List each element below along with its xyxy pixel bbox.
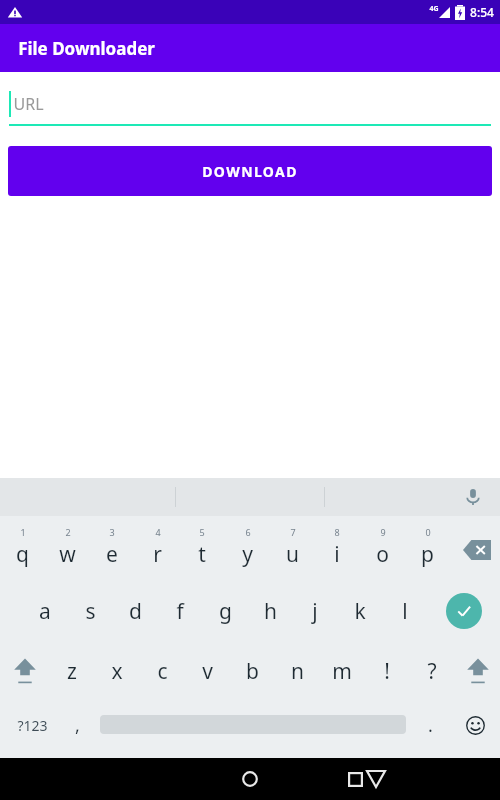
button[interactable]: Home (231, 758, 269, 800)
button[interactable]: v (186, 652, 228, 690)
button[interactable]: Back (126, 758, 500, 800)
staticText: 1 (20, 526, 26, 538)
button[interactable]: h (249, 592, 291, 630)
staticText: h (264, 597, 277, 626)
button[interactable]: c (141, 652, 183, 690)
button[interactable]: d (114, 592, 156, 630)
button[interactable]: n (276, 652, 318, 690)
staticText: n (291, 657, 304, 686)
staticText: ? (427, 657, 437, 686)
button[interactable]: . (412, 710, 448, 740)
button[interactable]: 8 (316, 526, 358, 570)
staticText: 0 (425, 526, 431, 538)
staticText: 9 (380, 526, 386, 538)
button[interactable]: k (339, 592, 381, 630)
staticText: e (106, 540, 118, 569)
staticText: x (111, 657, 123, 686)
staticText: s (85, 597, 96, 626)
staticText: j (312, 597, 318, 626)
staticText: k (354, 597, 366, 626)
staticText: URL (13, 93, 44, 115)
staticText: ?123 (17, 716, 48, 735)
button[interactable]: ?123 (6, 710, 58, 740)
staticText: 4G (429, 4, 439, 14)
button[interactable]: s (69, 592, 111, 630)
button[interactable]: Enter (446, 593, 482, 629)
button[interactable]: URL (9, 84, 491, 126)
staticText: File Downloader (18, 37, 155, 60)
staticText: q (16, 540, 29, 569)
button[interactable]: z (51, 652, 93, 690)
staticText: 8:54 (470, 4, 494, 20)
staticText: 4 (155, 526, 161, 538)
button[interactable]: Recents (336, 758, 374, 800)
staticText: y (242, 540, 253, 569)
button[interactable]: Voice input (458, 482, 488, 512)
staticText: 5 (199, 526, 205, 538)
staticText: m (332, 657, 352, 686)
button[interactable]: g (204, 592, 246, 630)
staticText: . (428, 713, 433, 738)
staticText: b (246, 657, 259, 686)
button[interactable]: 9 (361, 526, 403, 570)
button[interactable]: 7 (271, 526, 313, 570)
button[interactable]: Emoji (456, 710, 494, 740)
staticText: w (59, 540, 76, 569)
button[interactable]: f (159, 592, 201, 630)
button[interactable]: 4 (136, 526, 178, 570)
staticText: 8 (334, 526, 340, 538)
button[interactable]: Shift (6, 652, 44, 690)
button[interactable]: Backspace (459, 537, 495, 563)
staticText: c (157, 657, 168, 686)
button[interactable]: 1 (1, 526, 43, 570)
button[interactable]: a (24, 592, 66, 630)
button[interactable]: l (384, 592, 426, 630)
staticText: t (198, 540, 206, 569)
button[interactable]: b (231, 652, 273, 690)
button[interactable]: 0 (406, 526, 448, 570)
staticText: ! (384, 657, 390, 686)
staticText: 3 (109, 526, 115, 538)
button[interactable]: DOWNLOAD (8, 146, 492, 196)
button[interactable]: m (321, 652, 363, 690)
button[interactable]: 6 (226, 526, 268, 570)
staticText: g (219, 597, 232, 626)
button[interactable]: , (58, 710, 96, 740)
staticText: r (153, 540, 162, 569)
staticText: v (202, 657, 213, 686)
staticText: d (129, 597, 142, 626)
staticText: DOWNLOAD (202, 162, 298, 181)
button[interactable]: Shift right (459, 652, 497, 690)
staticText: 2 (65, 526, 71, 538)
staticText: i (334, 540, 340, 569)
button[interactable]: 2 (46, 526, 88, 570)
button[interactable]: j (294, 592, 336, 630)
staticText: 7 (290, 526, 296, 538)
staticText: p (421, 540, 434, 569)
staticText: f (176, 597, 184, 626)
staticText: a (39, 597, 51, 626)
button[interactable]: 5 (181, 526, 223, 570)
button[interactable]: x (96, 652, 138, 690)
staticText: u (286, 540, 299, 569)
button[interactable]: 3 (91, 526, 133, 570)
staticText: z (67, 657, 77, 686)
button[interactable]: ! (366, 652, 408, 690)
staticText: l (402, 597, 408, 626)
staticText: , (75, 713, 80, 738)
staticText: 6 (245, 526, 251, 538)
button[interactable]: ? (411, 652, 453, 690)
staticText: o (376, 540, 389, 569)
